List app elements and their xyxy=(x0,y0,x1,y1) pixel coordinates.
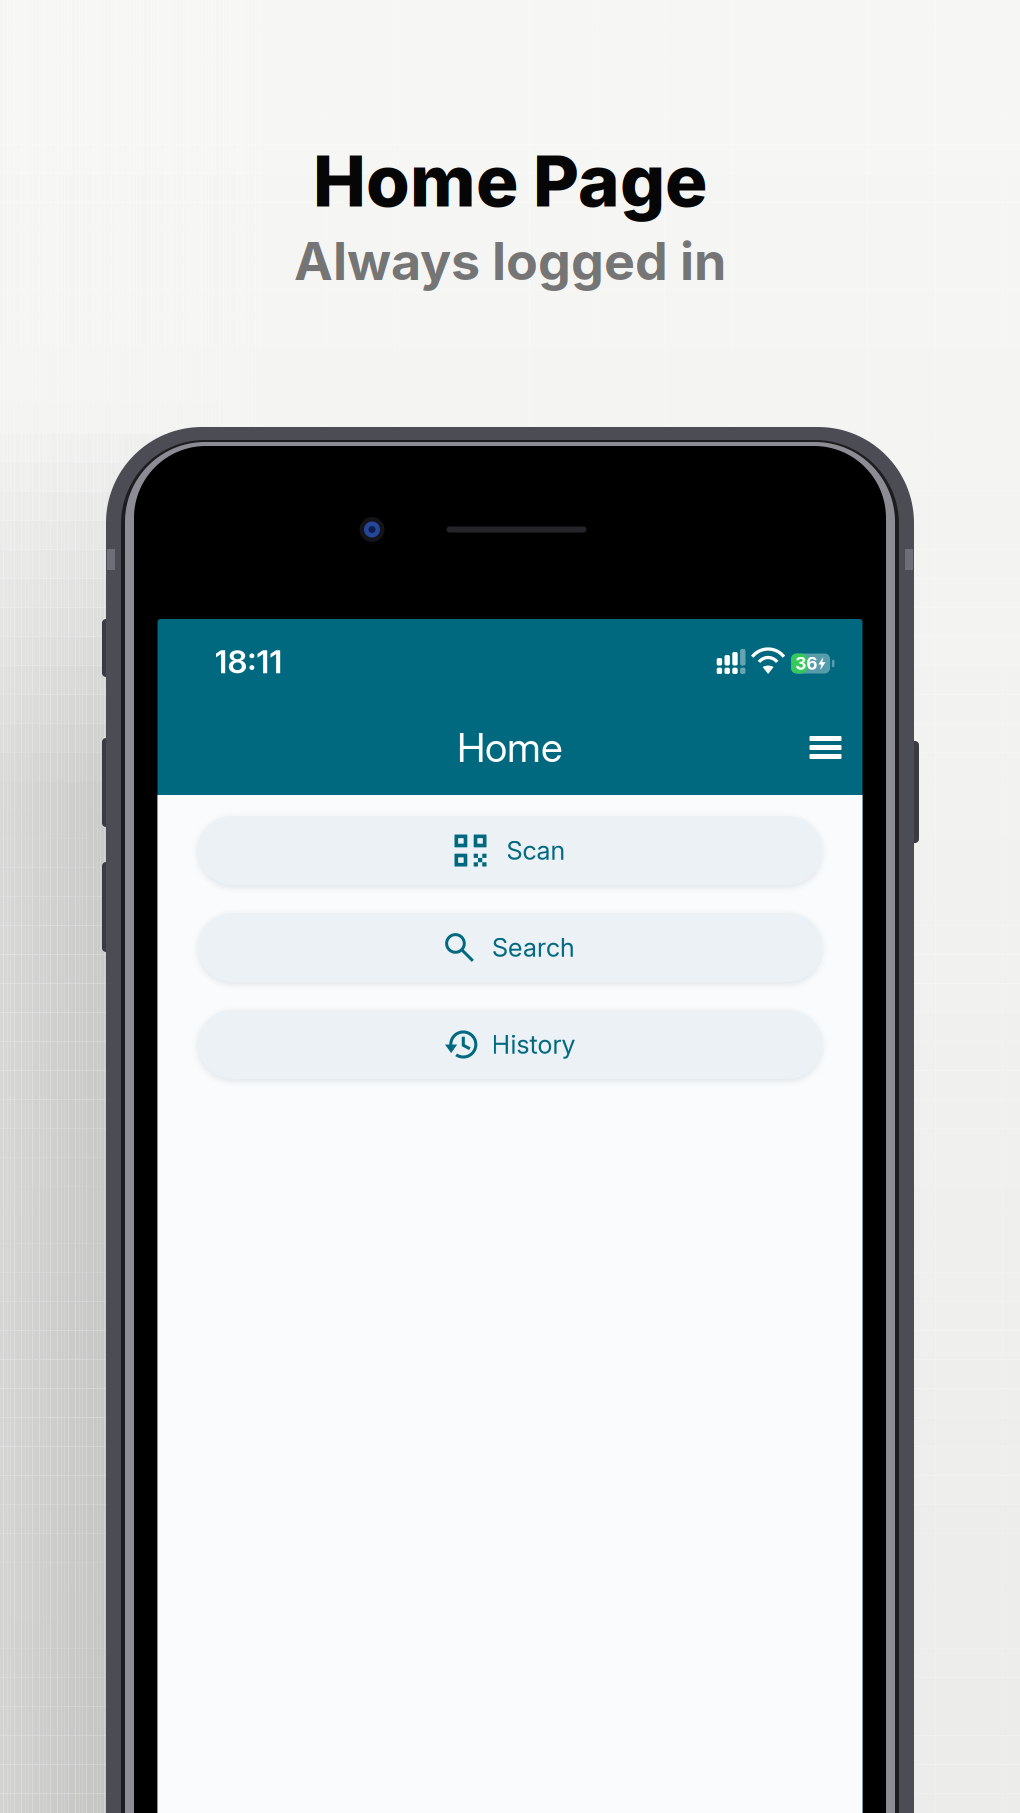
button[interactable]: Scan xyxy=(198,816,822,885)
staticText: 36 xyxy=(795,653,817,674)
button[interactable]: History xyxy=(198,1010,822,1079)
staticText: Home xyxy=(457,723,563,772)
staticText: Scan xyxy=(506,835,565,866)
staticText: Search xyxy=(492,932,575,963)
button[interactable]: Menu xyxy=(797,719,853,775)
staticText: Always logged in xyxy=(294,229,726,292)
button[interactable]: Search xyxy=(198,913,822,982)
staticText: Home Page xyxy=(313,138,707,223)
staticText: 18:11 xyxy=(214,642,282,681)
staticText: History xyxy=(491,1029,575,1060)
